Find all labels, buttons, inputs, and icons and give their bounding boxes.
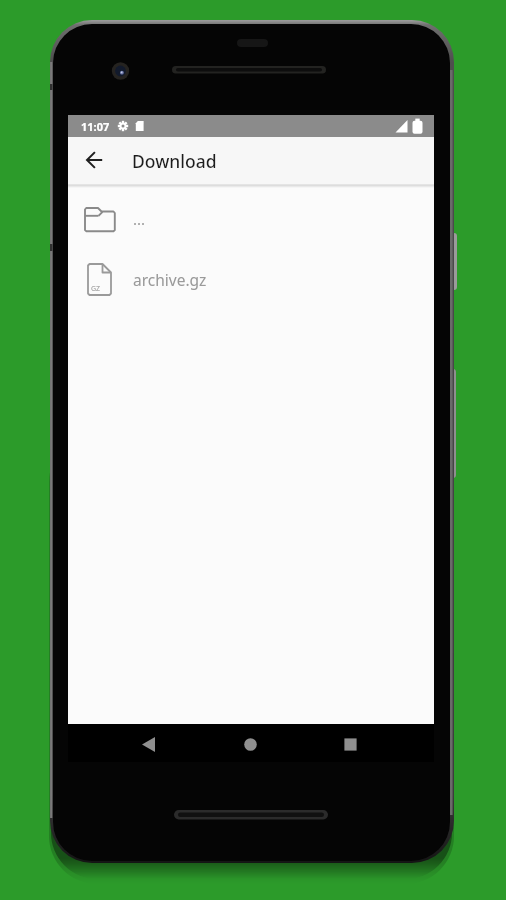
button[interactable] (236, 730, 264, 758)
staticText: archive.gz (133, 269, 207, 290)
staticText: Download (132, 149, 217, 173)
button[interactable] (336, 730, 364, 758)
button[interactable]: GZ (68, 249, 434, 310)
button[interactable] (68, 137, 115, 184)
button[interactable]: ... (68, 188, 434, 249)
button[interactable] (134, 730, 162, 758)
staticText: 11:07 (81, 119, 110, 134)
staticText: ... (133, 209, 146, 229)
staticText: GZ (91, 284, 101, 294)
